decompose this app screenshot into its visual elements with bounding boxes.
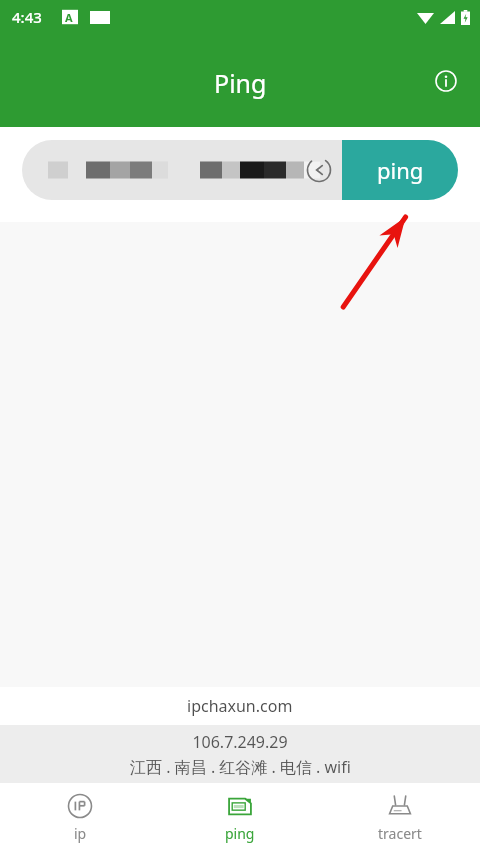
button[interactable]: tracert: [320, 783, 480, 853]
staticText: Ping: [214, 66, 267, 100]
staticText: 江西 . 南昌 . 红谷滩 . 电信 . wifi: [130, 756, 351, 778]
button[interactable]: ip: [0, 783, 160, 853]
staticText: ipchaxun.com: [187, 695, 293, 717]
staticText: ping: [377, 155, 424, 185]
staticText: 4:43: [12, 7, 42, 27]
staticText: ping: [225, 824, 255, 843]
staticText: ip: [74, 824, 87, 843]
staticText: 106.7.249.29: [192, 731, 288, 753]
button[interactable]: ping: [160, 783, 320, 853]
button[interactable]: [22, 140, 342, 200]
staticText: A: [65, 10, 73, 25]
staticText: tracert: [378, 824, 422, 843]
button[interactable]: Info: [426, 61, 466, 101]
button[interactable]: ping: [342, 140, 458, 200]
